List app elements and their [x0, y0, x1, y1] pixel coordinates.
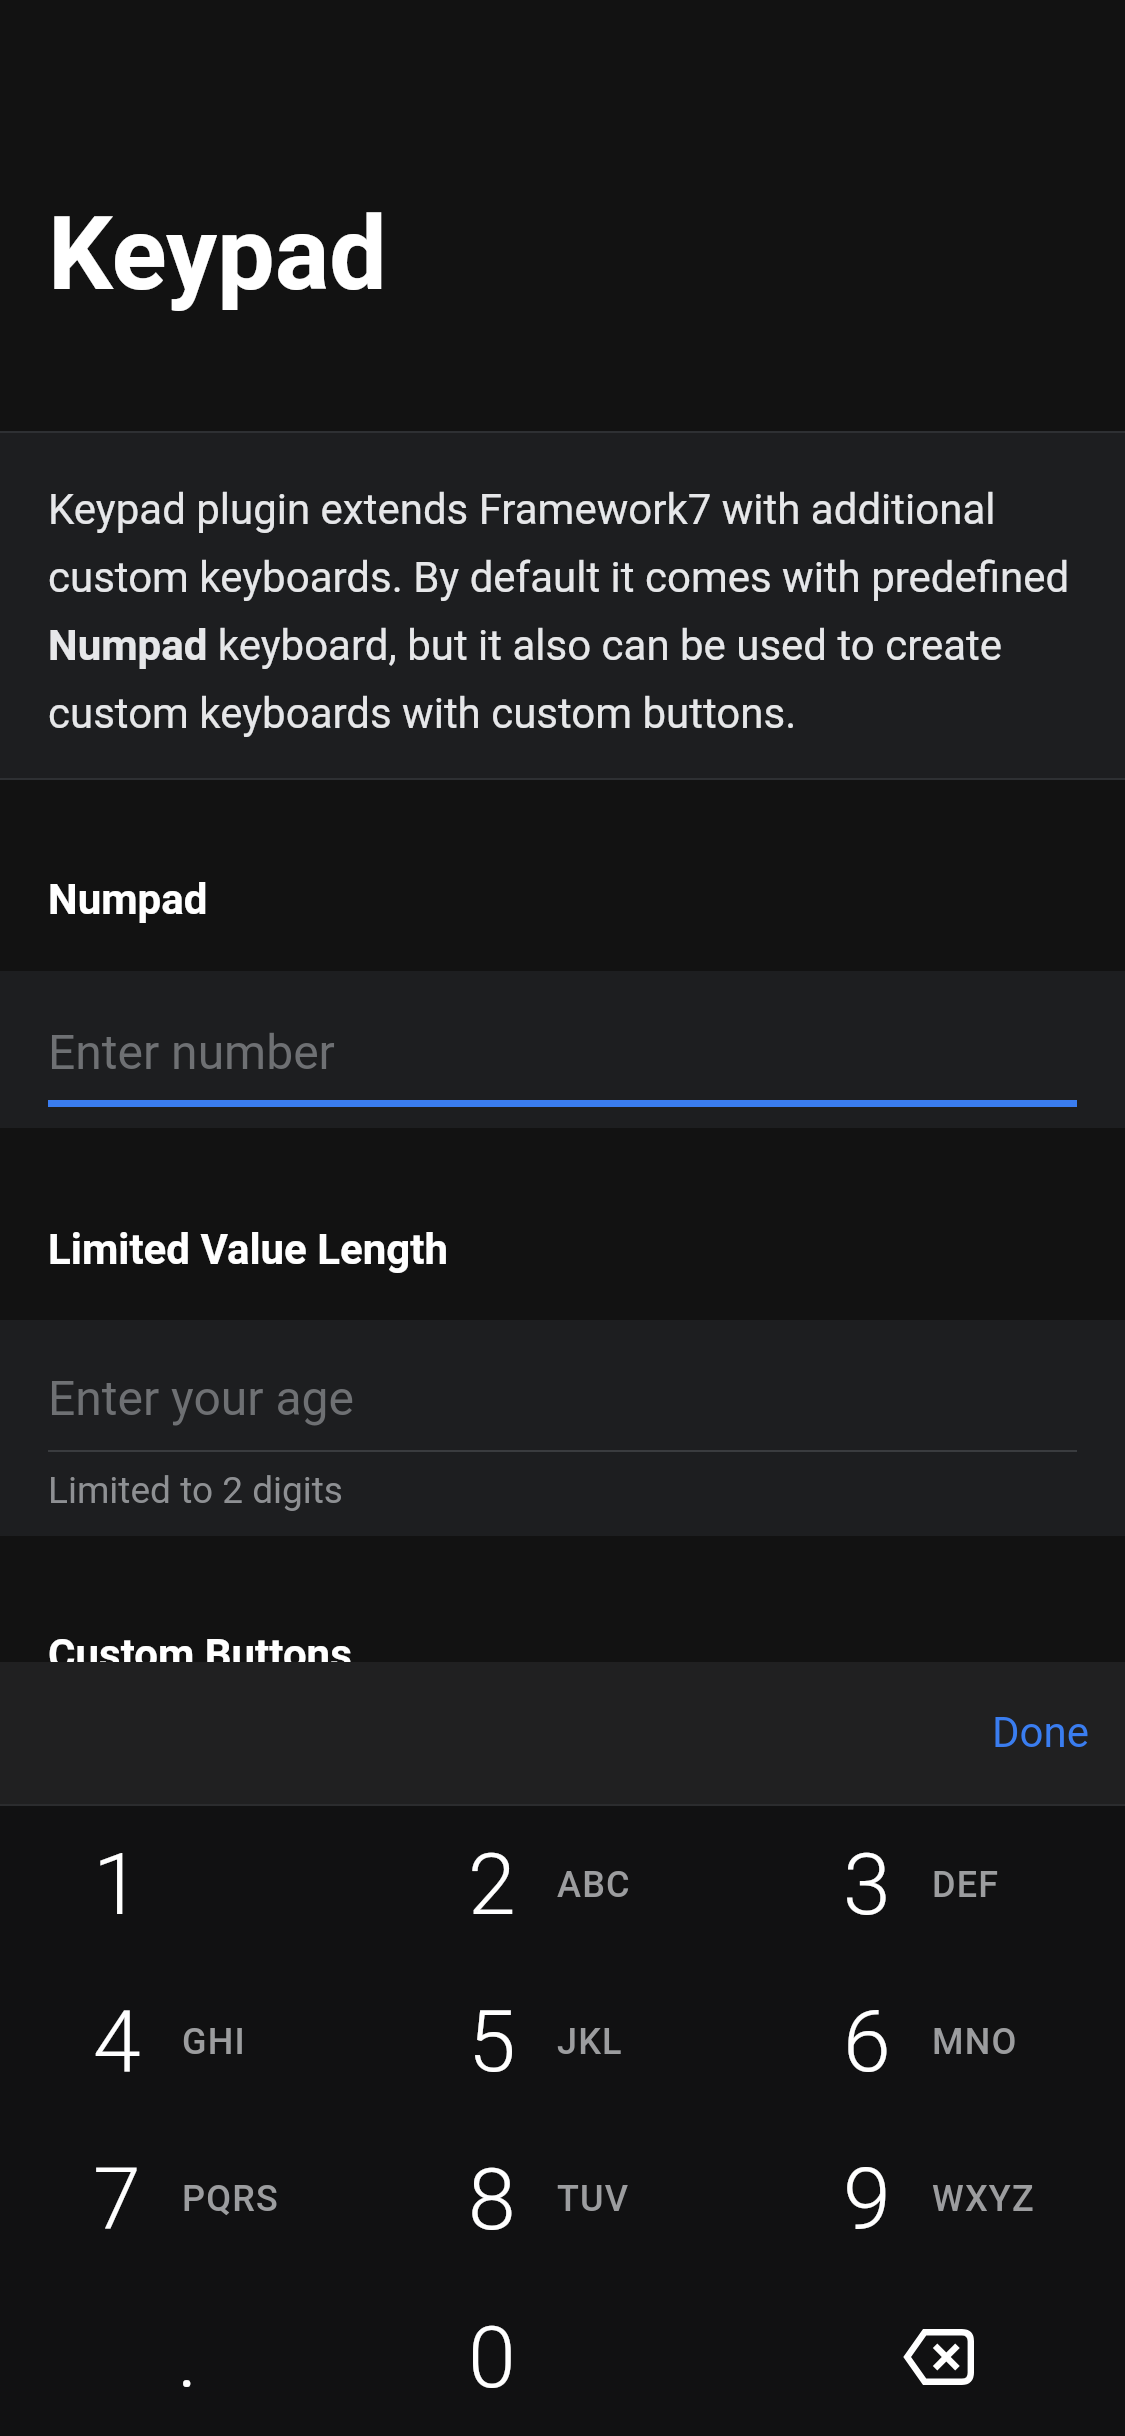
staticText: 3 — [843, 1834, 891, 1935]
button[interactable]: 0 — [375, 2278, 750, 2436]
button[interactable]: 6 — [750, 1963, 1125, 2120]
staticText: Custom Buttons — [48, 1630, 352, 1662]
button[interactable]: 5 — [375, 1963, 750, 2120]
staticText: DEF — [932, 1864, 1000, 1906]
staticText: Limited Value Length — [48, 1225, 448, 1274]
button[interactable]: 8 — [375, 2120, 750, 2278]
button[interactable]: Done — [952, 1662, 1125, 1803]
button[interactable]: 1 — [0, 1806, 375, 1963]
staticText: WXYZ — [932, 2178, 1035, 2220]
staticText: . — [177, 2307, 198, 2408]
staticText: Enter your age — [48, 1370, 354, 1426]
staticText: TUV — [557, 2178, 630, 2220]
staticText: PQRS — [182, 2178, 279, 2220]
button[interactable]: 4 — [0, 1963, 375, 2120]
staticText: Keypad — [48, 194, 387, 314]
staticText: 1 — [93, 1834, 141, 1935]
staticText: 9 — [843, 2149, 891, 2250]
staticText: Done — [992, 1708, 1089, 1757]
button[interactable]: Enter number — [0, 971, 1125, 1128]
staticText: 7 — [93, 2149, 141, 2250]
staticText: MNO — [932, 2021, 1018, 2063]
staticText: JKL — [557, 2021, 623, 2063]
button[interactable]: 2 — [375, 1806, 750, 1963]
button[interactable]: Enter your age — [0, 1320, 1125, 1536]
staticText: 5 — [468, 1991, 516, 2092]
staticText: ABC — [557, 1864, 631, 1906]
staticText: GHI — [182, 2021, 246, 2063]
staticText: 0 — [468, 2307, 516, 2408]
button[interactable]: 7 — [0, 2120, 375, 2278]
button[interactable]: 3 — [750, 1806, 1125, 1963]
button[interactable]: . — [0, 2278, 375, 2436]
staticText: Keypad plugin extends Framework7 with ad… — [48, 485, 1077, 738]
staticText: Numpad — [48, 875, 208, 924]
staticText: 2 — [468, 1834, 516, 1935]
staticText: 8 — [468, 2149, 516, 2250]
staticText: 6 — [843, 1991, 891, 2092]
button[interactable]: 9 — [750, 2120, 1125, 2278]
staticText: Limited to 2 digits — [48, 1469, 343, 1512]
staticText: Enter number — [48, 1024, 335, 1080]
staticText: 4 — [93, 1991, 141, 2092]
button[interactable]: Backspace — [750, 2278, 1125, 2436]
